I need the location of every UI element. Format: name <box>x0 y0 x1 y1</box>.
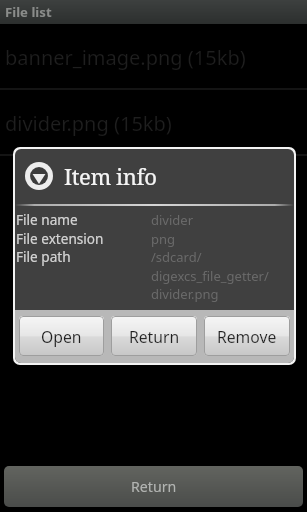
staticText: /sdcard/ <box>151 248 202 266</box>
staticText: banner_image.png (15kb) <box>5 44 246 71</box>
staticText: png <box>151 230 176 248</box>
button[interactable]: Open <box>19 316 104 356</box>
button[interactable]: divider.png (15kb) <box>0 90 307 154</box>
staticText: divider <box>151 211 194 229</box>
staticText: Item info <box>64 161 157 191</box>
staticText: File name <box>16 210 78 229</box>
staticText: Remove <box>217 326 277 347</box>
staticText: Return <box>131 477 177 496</box>
staticText: divider.png <box>151 285 219 303</box>
staticText: File list <box>5 3 52 21</box>
staticText: Return <box>129 326 180 347</box>
other: Item info <box>25 162 53 190</box>
staticText: File path <box>16 247 71 266</box>
staticText: digexcs_file_getter/ <box>151 267 269 285</box>
staticText: divider.png (15kb) <box>5 110 172 137</box>
staticText: File extension <box>16 229 104 248</box>
button[interactable]: Return <box>4 466 303 507</box>
staticText: Open <box>41 326 82 347</box>
button[interactable]: File list <box>0 0 307 24</box>
button[interactable]: banner_image.png (15kb) <box>0 24 307 88</box>
button[interactable]: Remove <box>204 316 290 356</box>
button[interactable]: Return <box>111 316 197 356</box>
